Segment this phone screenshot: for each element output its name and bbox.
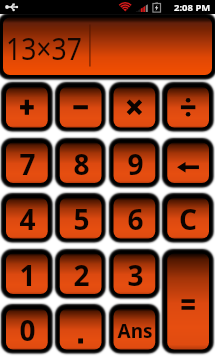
button[interactable]: Divide — [167, 87, 209, 128]
button[interactable]: C — [167, 198, 209, 239]
button[interactable]: 4 — [6, 198, 48, 239]
button[interactable]: 3 — [114, 254, 156, 295]
staticText: 4 — [19, 200, 36, 238]
button[interactable]: 7 — [6, 143, 48, 184]
button[interactable]: 6 — [114, 198, 156, 239]
staticText: 6 — [127, 200, 144, 238]
button[interactable]: Backspace — [167, 143, 209, 184]
button[interactable]: 5 — [60, 198, 102, 239]
button[interactable]: Minus — [60, 87, 102, 128]
staticText: 2:08 PM — [174, 1, 211, 14]
button[interactable]: 0 — [6, 309, 48, 350]
staticText: 2 — [73, 256, 90, 294]
button[interactable]: Plus — [6, 87, 48, 128]
button[interactable]: Ans — [114, 309, 156, 350]
button[interactable]: 2 — [60, 254, 102, 295]
staticText: C — [179, 200, 197, 238]
staticText: 1 — [19, 256, 36, 294]
button[interactable]: Equals — [167, 254, 209, 350]
staticText: 5 — [73, 200, 90, 238]
staticText: 8 — [73, 145, 90, 183]
staticText: 3 — [127, 256, 144, 294]
staticText: 9 — [127, 145, 144, 183]
staticText: 13×37 — [6, 27, 82, 69]
button[interactable]: Decimal point — [60, 309, 102, 350]
staticText: 7 — [19, 145, 36, 183]
button[interactable]: 1 — [6, 254, 48, 295]
staticText: Ans — [117, 318, 153, 344]
button[interactable]: Multiply — [114, 87, 156, 128]
button[interactable]: 8 — [60, 143, 102, 184]
button[interactable]: 9 — [114, 143, 156, 184]
staticText: 0 — [19, 311, 36, 349]
